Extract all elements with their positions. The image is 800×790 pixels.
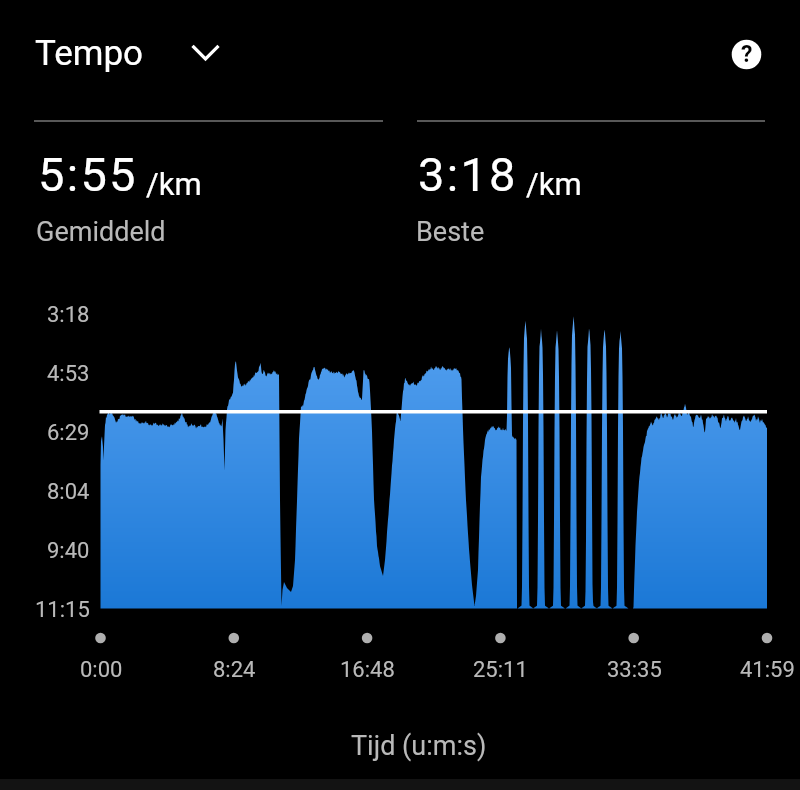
staticText: 33:35 xyxy=(607,657,662,683)
staticText: /km xyxy=(526,166,582,202)
staticText: 3:18 xyxy=(47,302,90,328)
staticText: 8:24 xyxy=(213,657,256,683)
staticText: 9:40 xyxy=(47,538,90,564)
staticText: 0:00 xyxy=(80,657,123,683)
staticText: Tijd (u:m:s) xyxy=(351,730,487,762)
staticText: 4:53 xyxy=(47,361,90,387)
staticText: ? xyxy=(741,41,753,68)
staticText: Beste xyxy=(416,216,485,248)
staticText: 3:18 xyxy=(418,147,518,202)
staticText: 5:55 xyxy=(38,147,138,202)
staticText: Tempo xyxy=(35,33,144,74)
button[interactable]: Help xyxy=(726,34,767,75)
staticText: 16:48 xyxy=(340,657,395,683)
staticText: 25:11 xyxy=(473,657,528,683)
staticText: 6:29 xyxy=(47,420,90,446)
staticText: /km xyxy=(146,166,202,202)
button[interactable]: Tempo xyxy=(35,33,219,74)
staticText: 8:04 xyxy=(47,479,90,505)
staticText: Gemiddeld xyxy=(36,216,166,248)
staticText: 41:59 xyxy=(740,657,795,683)
staticText: 11:15 xyxy=(35,597,90,623)
